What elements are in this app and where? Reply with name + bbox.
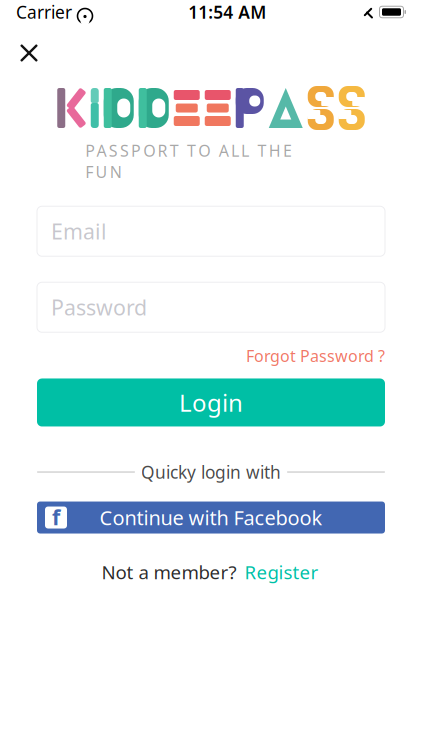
staticText: 11:54 AM: [188, 0, 266, 23]
button[interactable]: Login: [37, 378, 385, 426]
staticText: Register: [244, 559, 318, 584]
button[interactable]: Close: [0, 32, 54, 74]
staticText: f: [52, 503, 60, 531]
staticText: Carrier: [16, 0, 72, 23]
staticText: PASSPORT TO ALL THE FUN: [85, 140, 337, 161]
staticText: Password: [51, 293, 147, 321]
button[interactable]: Register: [242, 555, 320, 588]
staticText: Email: [51, 217, 107, 245]
staticText: Forgot Password ?: [246, 345, 385, 366]
staticText: Login: [179, 387, 243, 418]
staticText: Not a member?: [101, 559, 236, 584]
staticText: Continue with Facebook: [99, 504, 322, 531]
button[interactable]: Forgot Password ?: [246, 341, 385, 370]
staticText: Quicky login with: [141, 460, 281, 483]
button[interactable]: f: [37, 501, 385, 533]
